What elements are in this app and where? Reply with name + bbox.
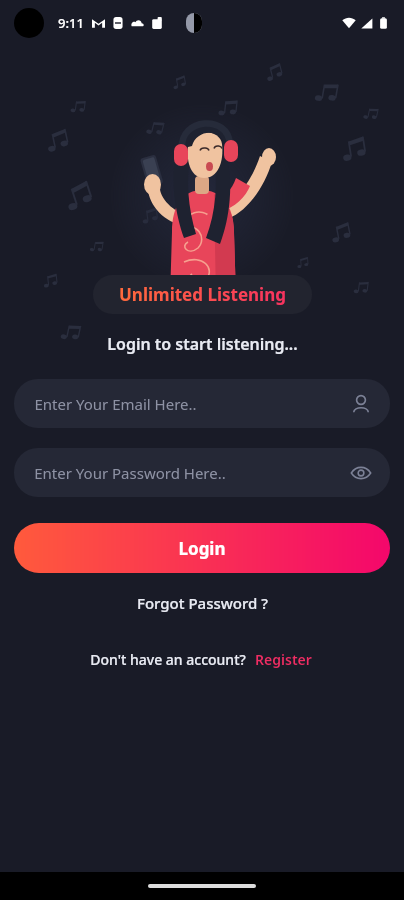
button[interactable]: Login: [14, 523, 390, 573]
staticText: Enter Your Email Here..: [34, 394, 197, 414]
staticText: Forgot Password ?: [137, 593, 268, 613]
staticText: Register: [255, 650, 312, 669]
button[interactable]: Unlimited Listening: [93, 275, 312, 314]
button[interactable]: Enter Your Email Here..: [14, 379, 390, 428]
other: Account: [350, 393, 372, 415]
button[interactable]: Enter Your Password Here..: [14, 448, 390, 497]
other: Show password: [350, 462, 372, 484]
staticText: Login: [178, 537, 226, 560]
staticText: Login to start listening...: [107, 333, 298, 355]
staticText: Unlimited Listening: [119, 283, 286, 306]
button[interactable]: Forgot Password ?: [123, 587, 282, 619]
staticText: Enter Your Password Here..: [34, 463, 226, 483]
staticText: 9:11: [58, 14, 84, 32]
button[interactable]: Register: [252, 647, 315, 672]
staticText: Don't have an account?: [90, 650, 246, 669]
